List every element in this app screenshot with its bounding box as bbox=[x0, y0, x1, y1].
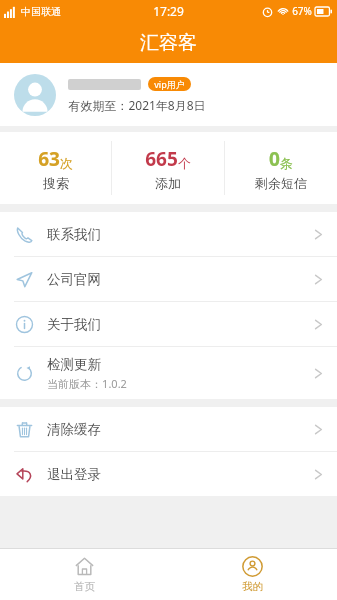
other: Log out bbox=[16, 466, 33, 483]
staticText: 665 bbox=[145, 146, 178, 172]
staticText: 联系我们 bbox=[47, 226, 101, 243]
staticText: 当前版本：1.0.2 bbox=[47, 376, 127, 391]
button[interactable]: 首页 bbox=[0, 549, 168, 600]
staticText: 0 bbox=[269, 146, 280, 172]
staticText: 清除缓存 bbox=[47, 421, 101, 438]
staticText: 首页 bbox=[74, 580, 95, 593]
button[interactable]: Log out bbox=[0, 452, 337, 496]
staticText: 个 bbox=[178, 155, 191, 171]
staticText: 次 bbox=[60, 155, 73, 171]
button[interactable]: Check updates bbox=[0, 347, 337, 399]
button[interactable]: 我的 bbox=[168, 549, 337, 600]
staticText: 剩余短信 bbox=[255, 175, 307, 191]
button[interactable]: 665 bbox=[112, 132, 224, 204]
staticText: 汇容客 bbox=[140, 31, 197, 55]
other: About bbox=[16, 316, 33, 333]
staticText: 我的 bbox=[242, 580, 263, 593]
staticText: 67% bbox=[292, 4, 312, 18]
other: Phone bbox=[16, 226, 33, 243]
staticText: 条 bbox=[280, 155, 293, 171]
staticText: 检测更新 bbox=[47, 356, 101, 373]
button[interactable]: 0 bbox=[225, 132, 337, 204]
other: Clear cache bbox=[16, 421, 33, 438]
button[interactable]: Website bbox=[0, 257, 337, 301]
staticText: 退出登录 bbox=[47, 466, 101, 483]
staticText: 63 bbox=[38, 146, 60, 172]
other: Website bbox=[16, 271, 33, 288]
staticText: 添加 bbox=[155, 175, 181, 191]
staticText: 关于我们 bbox=[47, 316, 101, 333]
staticText: 公司官网 bbox=[47, 271, 101, 288]
staticText: 17:29 bbox=[153, 3, 184, 19]
staticText: 中国联通 bbox=[21, 5, 61, 18]
button[interactable]: vip用户 bbox=[0, 63, 337, 126]
button[interactable]: 63 bbox=[0, 132, 111, 204]
other: Check updates bbox=[16, 365, 33, 382]
button[interactable]: Phone bbox=[0, 212, 337, 256]
button[interactable]: Clear cache bbox=[0, 407, 337, 451]
button[interactable]: About bbox=[0, 302, 337, 346]
staticText: 搜索 bbox=[43, 175, 69, 191]
staticText: 有效期至：2021年8月8日 bbox=[68, 97, 206, 113]
staticText: vip用户 bbox=[154, 78, 185, 90]
